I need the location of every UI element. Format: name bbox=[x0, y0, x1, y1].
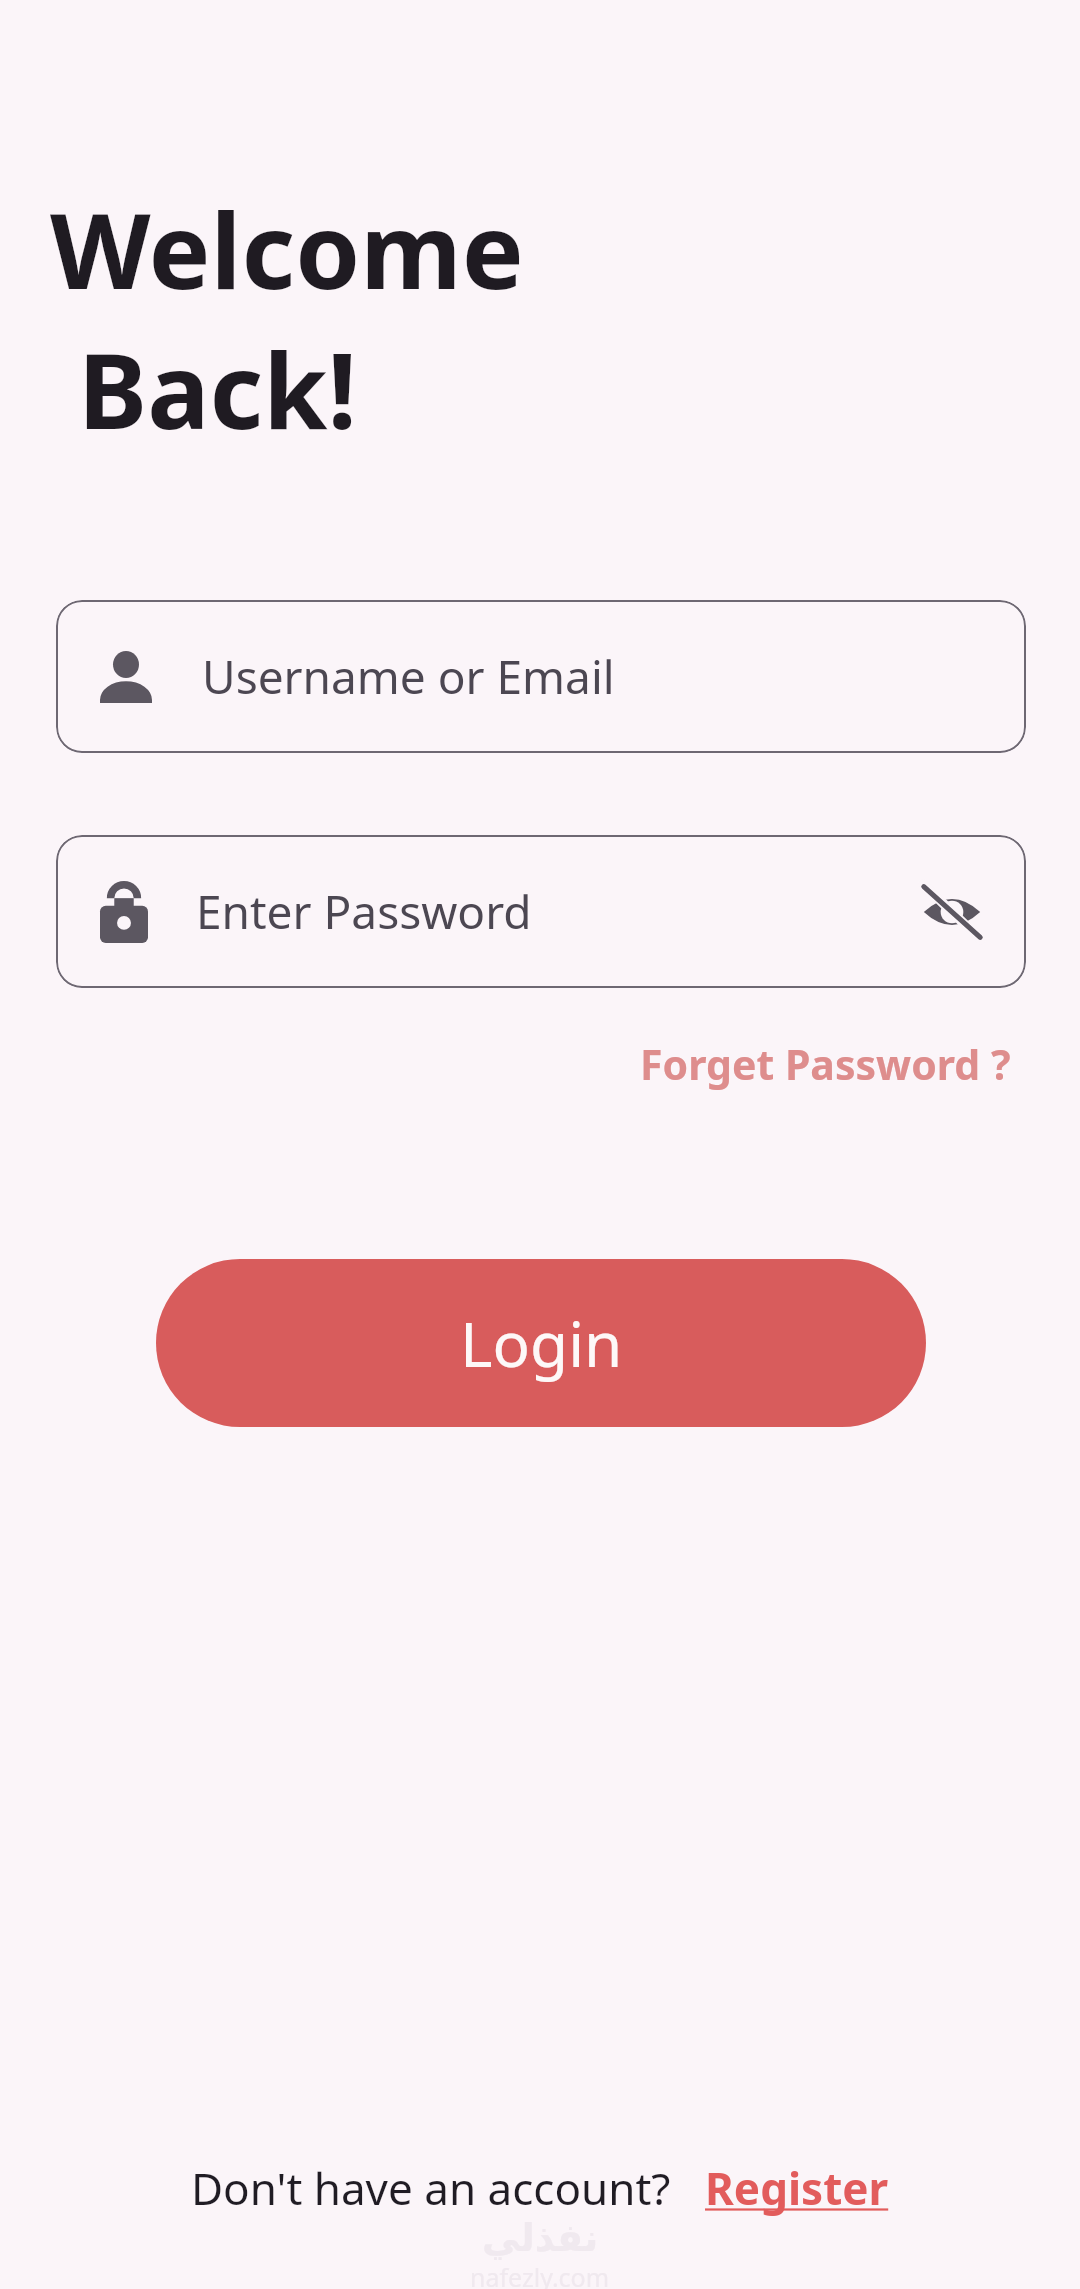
staticText: Back! bbox=[78, 318, 357, 460]
button[interactable]: Forget Password ? bbox=[620, 1024, 1031, 1104]
button[interactable]: Username or Email bbox=[56, 600, 1026, 753]
staticText: nafezly.com bbox=[470, 2260, 610, 2289]
staticText: Enter Password bbox=[196, 880, 532, 943]
staticText: Username or Email bbox=[202, 645, 615, 708]
staticText: نفذلي bbox=[482, 2216, 599, 2260]
staticText: Don't have an account? bbox=[191, 2158, 671, 2218]
staticText: Register bbox=[705, 2158, 889, 2218]
button[interactable]: Show password bbox=[918, 878, 986, 946]
staticText: Login bbox=[460, 1301, 623, 1385]
button[interactable]: Enter Password bbox=[56, 835, 1026, 988]
staticText: Welcome bbox=[50, 178, 524, 320]
staticText: Forget Password ? bbox=[640, 1036, 1011, 1092]
button[interactable]: Register bbox=[705, 2158, 889, 2218]
button[interactable]: Login bbox=[156, 1259, 926, 1427]
